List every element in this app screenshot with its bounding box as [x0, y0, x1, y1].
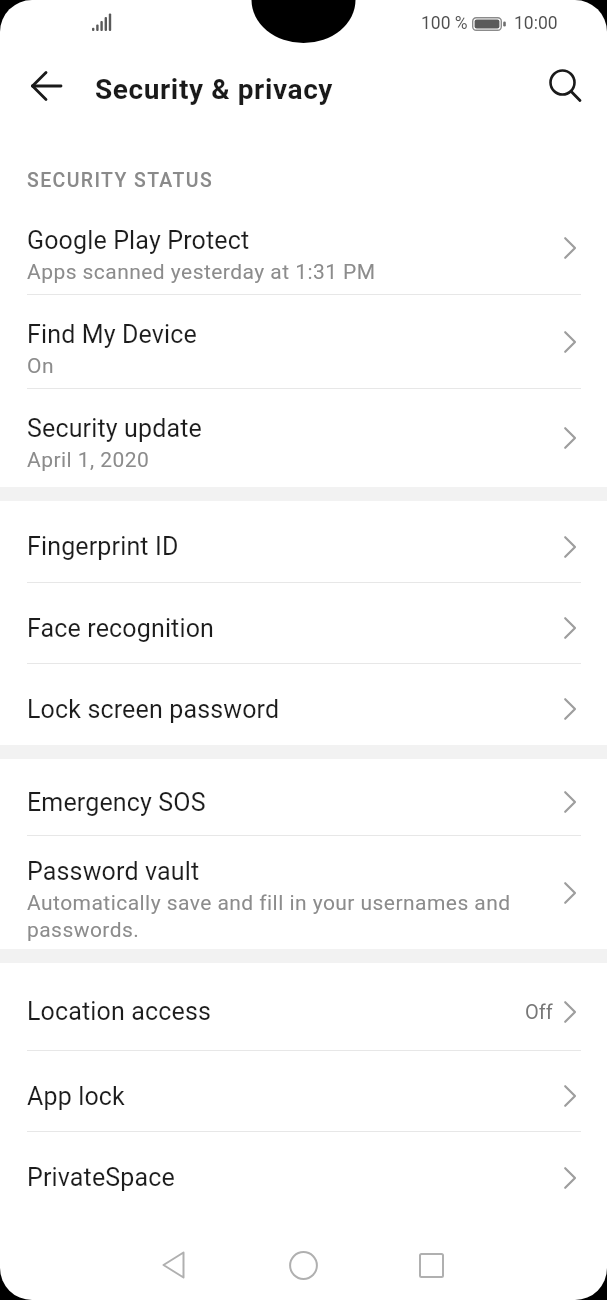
staticText: SECURITY STATUS: [27, 169, 214, 192]
staticText: April 1, 2020: [27, 448, 150, 473]
staticText: Password vault: [27, 857, 200, 886]
button[interactable]: Face recognition: [0, 583, 607, 664]
staticText: Off: [525, 1000, 553, 1023]
staticText: 10:00: [514, 13, 558, 34]
staticText: On: [27, 354, 54, 379]
staticText: Emergency SOS: [27, 788, 564, 817]
staticText: Location access: [27, 997, 525, 1026]
button[interactable]: [18, 58, 74, 114]
button[interactable]: Lock screen password: [0, 664, 607, 745]
staticText: Google Play Protect: [27, 226, 250, 255]
button[interactable]: Emergency SOS: [0, 759, 607, 836]
staticText: Automatically save and fill in your user…: [27, 891, 511, 942]
staticText: Lock screen password: [27, 695, 564, 724]
button[interactable]: [259, 1230, 347, 1300]
button[interactable]: Location access: [0, 963, 607, 1051]
staticText: Security update: [27, 414, 202, 443]
staticText: Face recognition: [27, 614, 564, 643]
staticText: Fingerprint ID: [27, 532, 564, 561]
button[interactable]: Security update: [0, 389, 607, 487]
staticText: Security & privacy: [95, 73, 334, 106]
button[interactable]: Find My Device: [0, 295, 607, 389]
button[interactable]: [541, 62, 591, 112]
staticText: PrivateSpace: [27, 1163, 564, 1192]
staticText: Apps scanned yesterday at 1:31 PM: [27, 260, 376, 285]
button[interactable]: Google Play Protect: [0, 201, 607, 295]
button[interactable]: PrivateSpace: [0, 1132, 607, 1214]
staticText: Find My Device: [27, 320, 197, 349]
staticText: App lock: [27, 1082, 564, 1111]
button[interactable]: [387, 1230, 475, 1300]
staticText: 100 %: [421, 13, 468, 34]
button[interactable]: Fingerprint ID: [0, 501, 607, 583]
button[interactable]: [129, 1230, 217, 1300]
button[interactable]: App lock: [0, 1051, 607, 1132]
button[interactable]: Password vault: [0, 836, 607, 949]
